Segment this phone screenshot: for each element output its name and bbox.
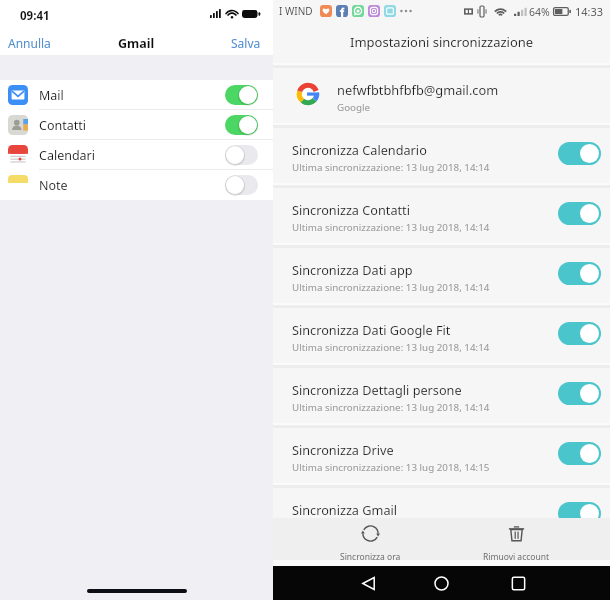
staticText: Impostazioni sincronizzazione (350, 33, 534, 51)
staticText: Calendari (39, 147, 96, 164)
staticText: Sincronizza Dati Google Fit (292, 321, 451, 338)
staticText: nefwfbtbhfbfb@gmail.com (337, 81, 499, 98)
button[interactable]: Calendari (0, 140, 273, 170)
button[interactable]: Sincronizza Contatti (273, 186, 610, 241)
staticText: Sincronizza Contatti (292, 201, 410, 218)
button[interactable]: Sincronizza Gmail (273, 486, 610, 541)
staticText: Rimuovi account (483, 551, 550, 560)
staticText: 64% (529, 5, 550, 19)
staticText: Ultima sincronizzazione: 13 lug 2018, 14… (292, 161, 490, 174)
staticText: 09:41 (20, 8, 50, 24)
staticText: I WIND (279, 4, 313, 18)
staticText: Sincronizza Drive (292, 441, 394, 458)
staticText: Sincronizza Calendario (292, 141, 427, 158)
button[interactable]: Sincronizza Drive (273, 426, 610, 481)
button[interactable]: Contatti (0, 110, 273, 140)
staticText: Google (337, 101, 371, 114)
staticText: Note (39, 177, 68, 194)
button[interactable]: Mail (0, 80, 273, 110)
button[interactable]: Rimuovi account (456, 518, 576, 560)
button[interactable]: Back (351, 566, 385, 600)
staticText: Sincronizza Dettagli persone (292, 381, 462, 398)
button[interactable]: Sincronizza Calendario (273, 126, 610, 181)
staticText: Sincronizza ora (340, 551, 401, 560)
button[interactable]: Sincronizza ora (310, 518, 430, 560)
button[interactable]: nefwfbtbhfbfb@gmail.com (273, 66, 610, 123)
button[interactable]: Sincronizza Dati app (273, 246, 610, 301)
button[interactable]: Sincronizza Dati Google Fit (273, 306, 610, 361)
staticText: Gmail (118, 35, 155, 52)
staticText: Ultima sincronizzazione: 13 lug 2018, 14… (292, 281, 490, 294)
staticText: Sincronizza Gmail (292, 501, 398, 518)
staticText: 14:33 (575, 4, 604, 19)
button[interactable]: Sincronizza Dettagli persone (273, 366, 610, 421)
staticText: Mail (39, 87, 64, 104)
button[interactable]: Salva (231, 35, 261, 51)
button[interactable]: Recents (501, 566, 535, 600)
button[interactable]: Note (0, 170, 273, 200)
staticText: Ultima sincronizzazione: 13 lug 2018, 14… (292, 221, 490, 234)
staticText: Ultima sincronizzazione: 13 lug 2018, 14… (292, 341, 490, 354)
staticText: Ultima sincronizzazione: 13 lug 2018, 14… (292, 461, 490, 474)
button[interactable]: Annulla (8, 35, 51, 51)
staticText: Sincronizza Dati app (292, 261, 413, 278)
button[interactable]: Home (424, 566, 458, 600)
staticText: Ultima sincronizzazione: 13 lug 2018, 14… (292, 521, 490, 534)
staticText: Ultima sincronizzazione: 13 lug 2018, 14… (292, 401, 490, 414)
staticText: Contatti (39, 117, 86, 134)
